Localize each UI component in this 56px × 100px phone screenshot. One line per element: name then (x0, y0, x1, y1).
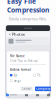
staticText: Photos (12, 32, 25, 37)
staticText: Compress (36, 87, 50, 90)
staticText: File Name (10, 54, 25, 58)
button[interactable]: zip (10, 73, 18, 77)
staticText: < (8, 32, 10, 37)
button[interactable]: 7z (33, 73, 40, 77)
button[interactable]: Cancel (20, 86, 33, 91)
staticText: Archive Format (10, 68, 31, 71)
staticText: Easily compress files. (9, 16, 47, 21)
staticText: Easy File Compression (7, 0, 49, 14)
staticText: Cancel (21, 87, 31, 90)
button[interactable]: Compress (35, 86, 51, 91)
button[interactable]: tar.gz (10, 79, 46, 82)
staticText: 7z (37, 73, 40, 77)
staticText: Click 'Trip to Bali.zip' (10, 59, 39, 63)
staticText: zip (14, 73, 18, 77)
staticText: tar.gz (14, 79, 21, 82)
